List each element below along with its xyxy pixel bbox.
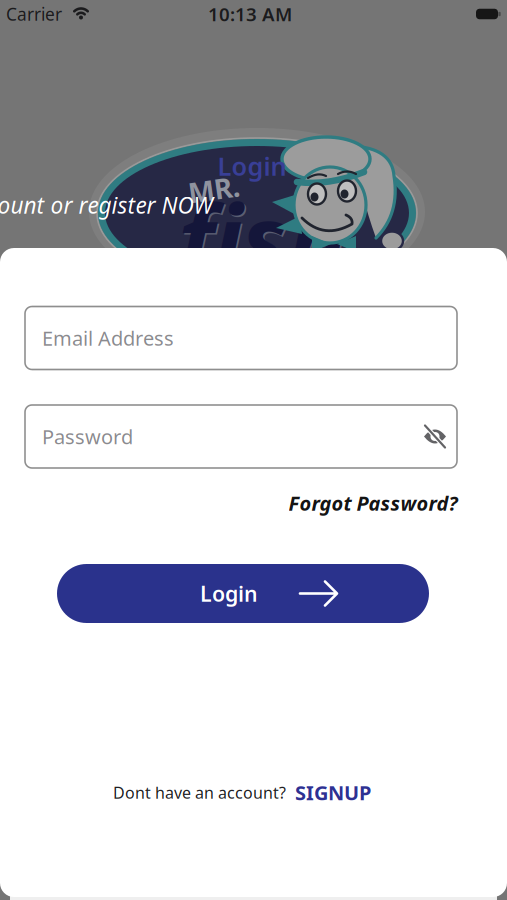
button[interactable]: Login: [57, 564, 429, 623]
button[interactable]: [422, 424, 448, 448]
staticText: Password: [42, 423, 133, 450]
staticText: fish: [179, 176, 347, 303]
staticText: MR.: [188, 170, 240, 208]
staticText: Forgot Password?: [288, 490, 457, 516]
staticText: Login: [217, 149, 286, 183]
button[interactable]: Forgot Password?: [288, 490, 457, 516]
staticText: ount or register NOW: [0, 190, 212, 220]
staticText: Login: [200, 579, 258, 608]
button[interactable]: Password: [25, 405, 457, 468]
staticText: Dont have an account?: [113, 782, 286, 803]
button[interactable]: Email Address: [25, 306, 457, 369]
staticText: fish: [178, 174, 346, 302]
staticText: SIGNUP: [295, 779, 371, 806]
button[interactable]: SIGNUP: [295, 779, 371, 806]
staticText: Email Address: [42, 325, 174, 351]
staticText: 10:13 AM: [208, 2, 292, 26]
staticText: Carrier: [6, 2, 62, 25]
